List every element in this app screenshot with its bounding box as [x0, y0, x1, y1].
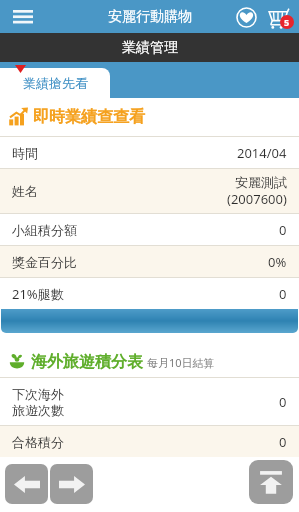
staticText: 業績管理 [122, 39, 178, 57]
button[interactable]: Shopping cart [261, 0, 295, 33]
staticText: 0 [279, 221, 287, 239]
button[interactable]: 小組積分額 [0, 214, 299, 245]
staticText: 業績搶先看 [23, 75, 88, 91]
button[interactable]: 下次海外 [0, 378, 299, 425]
staticText: 小組積分額 [12, 222, 77, 238]
staticText: 安麗行動購物 [108, 8, 192, 26]
staticText: (2007600) [227, 190, 287, 208]
button[interactable]: Scroll to top [249, 460, 293, 504]
staticText: 合格積分 [12, 434, 64, 450]
staticText: 即時業績查查看 [33, 107, 145, 127]
button[interactable]: Favorites [231, 2, 261, 32]
staticText: 每月10日結算 [147, 355, 215, 370]
staticText: 下次海外 [12, 386, 64, 402]
staticText: 旅遊次數 [12, 402, 64, 418]
button[interactable]: 合格積分 [0, 426, 299, 457]
button[interactable]: Menu [8, 2, 38, 32]
staticText: 0 [279, 285, 287, 303]
staticText: 安麗測試 [235, 174, 287, 190]
staticText: 姓名 [12, 183, 38, 199]
staticText: 21%腿數 [12, 285, 64, 303]
button[interactable]: 業績搶先看 [0, 68, 110, 98]
staticText: 2014/04 [237, 144, 287, 162]
button[interactable]: 21%腿數 [0, 278, 299, 309]
staticText: 海外旅遊積分表 [31, 352, 143, 372]
button[interactable]: Back [5, 464, 48, 504]
button[interactable]: 姓名 [0, 169, 299, 213]
staticText: 0 [279, 393, 287, 411]
staticText: 5 [284, 16, 290, 28]
button[interactable]: Forward [50, 464, 93, 504]
button[interactable]: 時間 [0, 137, 299, 168]
staticText: 0 [279, 433, 287, 451]
staticText: 時間 [12, 145, 38, 161]
staticText: 0% [268, 253, 287, 271]
staticText: 獎金百分比 [12, 254, 77, 270]
button[interactable]: 獎金百分比 [0, 246, 299, 277]
